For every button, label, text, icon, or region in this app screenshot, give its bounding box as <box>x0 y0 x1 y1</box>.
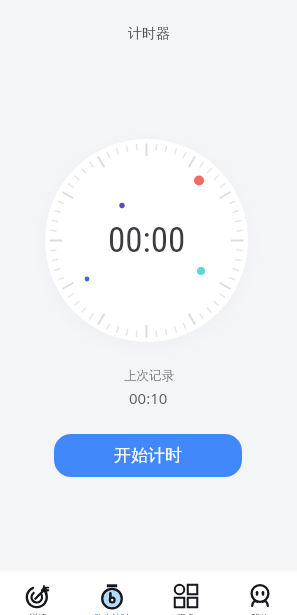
staticText: 00:10 <box>129 388 168 408</box>
staticText: 计时器 <box>128 25 170 43</box>
staticText: 上次记录 <box>124 368 174 384</box>
button[interactable]: More <box>149 573 223 615</box>
button[interactable]: 开始计时 <box>54 434 242 477</box>
staticText: 开始计时 <box>114 445 182 466</box>
staticText: 训练 <box>29 612 47 615</box>
button[interactable]: Timer <box>75 573 149 615</box>
staticText: 跑步计时 <box>94 612 130 615</box>
button[interactable]: Profile <box>223 573 297 615</box>
staticText: 我的 <box>251 612 269 615</box>
staticText: 00:00 <box>108 220 186 261</box>
staticText: 更多 <box>177 612 195 615</box>
button[interactable]: Training <box>0 573 75 615</box>
